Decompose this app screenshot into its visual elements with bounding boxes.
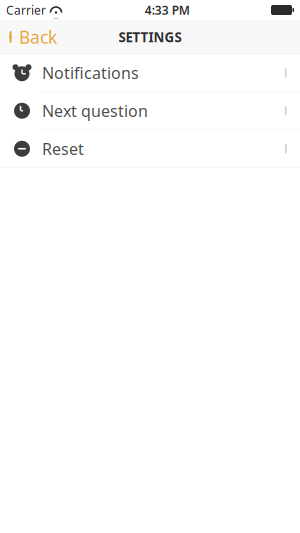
button[interactable]: Reset (0, 130, 300, 168)
staticText: Next question (42, 100, 148, 121)
staticText: Reset (42, 138, 84, 159)
button[interactable]: Notifications (0, 54, 300, 92)
staticText: Notifications (42, 62, 139, 83)
staticText: 4:33 PM (145, 2, 190, 18)
staticText: SETTINGS (118, 28, 181, 46)
staticText: Carrier (6, 2, 46, 18)
staticText: Back (19, 25, 57, 48)
button[interactable]: Back (0, 20, 65, 54)
button[interactable]: Next question (0, 92, 300, 130)
